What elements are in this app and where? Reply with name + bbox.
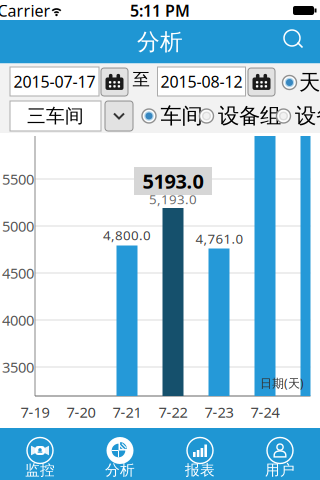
button[interactable]: 设备 xyxy=(276,103,320,129)
staticText: Carrier xyxy=(0,0,50,21)
staticText: 三车间 xyxy=(27,104,84,127)
staticText: 车间 xyxy=(160,103,202,129)
button[interactable]: 设备组 xyxy=(199,103,281,129)
staticText: 4000 xyxy=(2,310,34,330)
staticText: 4,800.0 xyxy=(103,226,151,244)
staticText: 2015-08-12 xyxy=(160,71,242,92)
staticText: 5000 xyxy=(2,216,34,236)
button[interactable]: 车间 xyxy=(141,103,202,129)
staticText: 天 xyxy=(299,69,320,96)
staticText: 4,761.0 xyxy=(195,230,243,247)
button[interactable]: 2015-07-17 xyxy=(10,67,99,96)
staticText: 2015-07-17 xyxy=(13,71,95,92)
staticText: 7-20 xyxy=(66,402,95,422)
button[interactable]: 2015-08-12 xyxy=(157,67,245,96)
button[interactable]: Choose workshop xyxy=(105,101,133,131)
staticText: 5193.0 xyxy=(142,168,203,194)
staticText: 设备 xyxy=(295,103,320,129)
staticText: 5,193.0 xyxy=(149,190,197,208)
staticText: 3500 xyxy=(2,357,34,377)
staticText: 日期(天) xyxy=(260,375,304,391)
staticText: 4500 xyxy=(2,263,34,283)
staticText: 7-23 xyxy=(204,402,233,422)
button[interactable]: 天 xyxy=(282,69,320,96)
staticText: 5500 xyxy=(2,169,34,189)
staticText: 7-24 xyxy=(250,402,279,422)
button[interactable]: Search xyxy=(273,20,317,63)
staticText: 设备组 xyxy=(218,103,281,129)
staticText: 至 xyxy=(132,69,149,90)
button[interactable]: Pick start date xyxy=(101,68,128,96)
staticText: 7-22 xyxy=(158,402,187,422)
button[interactable]: 报表 xyxy=(160,428,240,480)
staticText: 报表 xyxy=(185,461,215,479)
staticText: 7-21 xyxy=(112,402,141,422)
staticText: 用户 xyxy=(265,461,295,479)
button[interactable]: 监控 xyxy=(0,428,80,480)
button[interactable]: Pick end date xyxy=(248,68,275,96)
staticText: 7-19 xyxy=(20,402,49,422)
button[interactable]: 分析 xyxy=(80,428,160,480)
button[interactable]: 三车间 xyxy=(10,101,101,131)
staticText: 监控 xyxy=(25,461,55,479)
staticText: 分析 xyxy=(137,28,183,56)
staticText: 5:11 PM xyxy=(130,0,190,21)
button[interactable]: 用户 xyxy=(240,428,320,480)
staticText: 分析 xyxy=(105,461,135,479)
